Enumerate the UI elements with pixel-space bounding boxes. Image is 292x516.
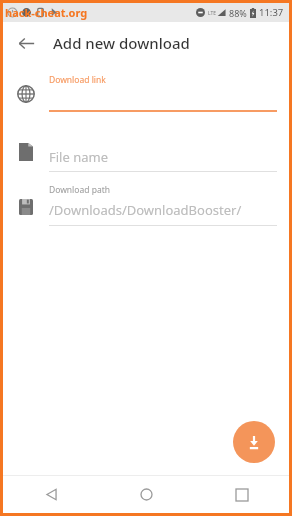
- staticText: 88%: [229, 7, 247, 19]
- button[interactable]: Start download: [233, 421, 275, 463]
- staticText: hack-cheat.org: [5, 5, 88, 20]
- button[interactable]: Back: [9, 26, 43, 60]
- staticText: LTE: [208, 10, 217, 17]
- staticText: Add new download: [53, 33, 190, 53]
- button[interactable]: Back: [3, 476, 99, 513]
- button[interactable]: File name: [49, 148, 108, 166]
- button[interactable]: /Downloads/DownloadBooster/: [49, 201, 242, 219]
- button[interactable]: Recent apps: [194, 476, 289, 513]
- button[interactable]: Home: [99, 476, 194, 513]
- staticText: Download path: [49, 184, 110, 196]
- staticText: 11:37: [259, 6, 284, 19]
- staticText: Download link: [49, 74, 106, 86]
